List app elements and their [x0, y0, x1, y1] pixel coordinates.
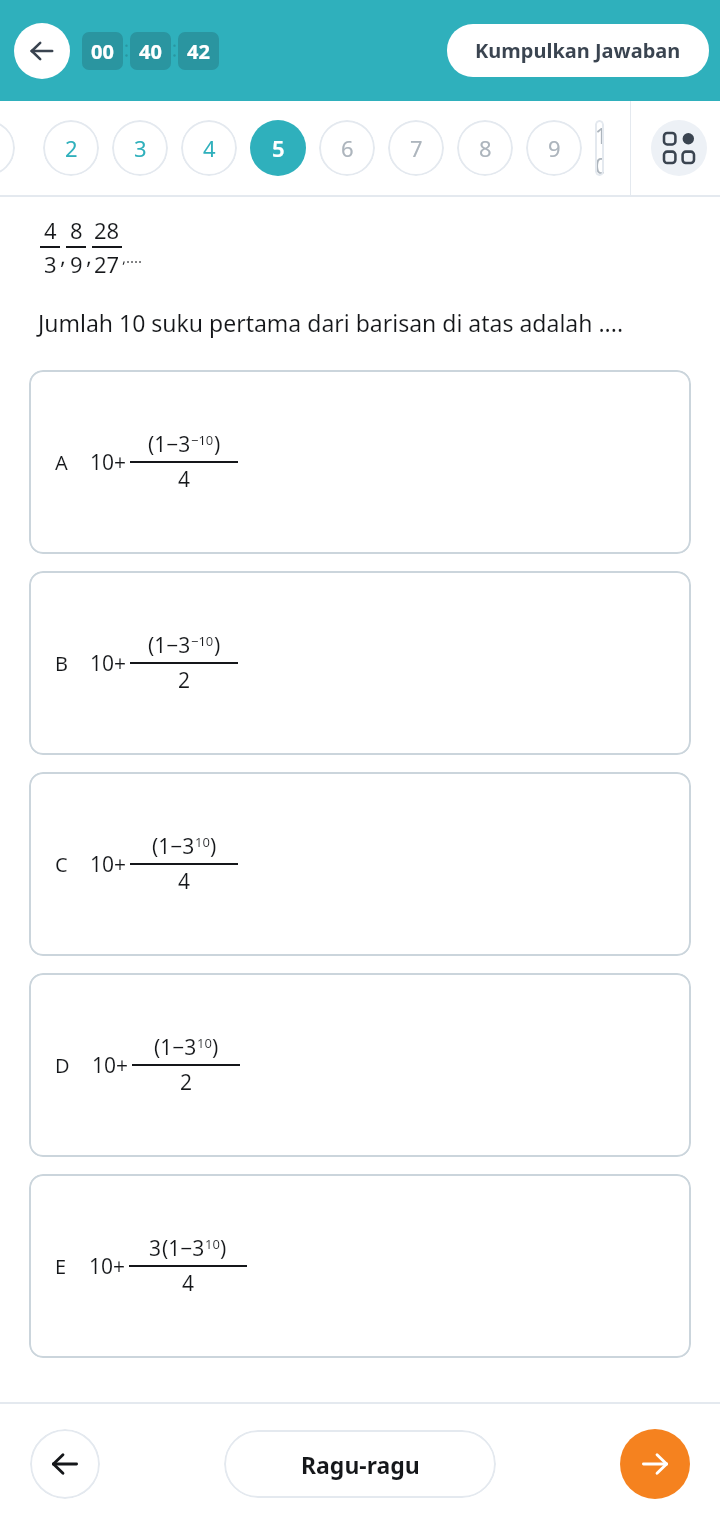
staticText: 40: [139, 38, 162, 65]
staticText: (1−3: [148, 631, 191, 660]
staticText: 9: [70, 249, 83, 279]
staticText: (1−3: [148, 430, 191, 459]
staticText: C: [55, 851, 68, 878]
staticText: 2: [65, 133, 78, 163]
staticText: ): [214, 631, 221, 660]
staticText: 4: [178, 867, 191, 896]
staticText: E: [55, 1253, 67, 1280]
staticText: 2: [178, 666, 191, 695]
staticText: 3: [134, 133, 147, 163]
button[interactable]: B: [29, 571, 691, 755]
button[interactable]: 2: [43, 120, 99, 176]
staticText: 3: [44, 249, 57, 279]
staticText: ): [212, 1033, 219, 1062]
button[interactable]: D: [29, 973, 691, 1157]
staticText: B: [55, 650, 68, 677]
staticText: 10: [197, 1034, 212, 1052]
staticText: 10+: [90, 448, 127, 477]
staticText: ): [210, 832, 217, 861]
button[interactable]: A: [29, 370, 691, 554]
staticText: 8: [479, 133, 492, 163]
staticText: ,: [86, 240, 92, 270]
button[interactable]: 10: [595, 120, 604, 176]
staticText: 10+: [90, 850, 127, 879]
button[interactable]: Ragu-ragu: [224, 1430, 496, 1498]
button[interactable]: 6: [319, 120, 375, 176]
staticText: Ragu-ragu: [301, 1449, 420, 1480]
button[interactable]: 8: [457, 120, 513, 176]
button[interactable]: Kumpulkan Jawaban: [447, 24, 709, 77]
button[interactable]: Previous question: [30, 1429, 100, 1499]
button[interactable]: C: [29, 772, 691, 956]
button[interactable]: Back: [14, 23, 70, 79]
button[interactable]: Question grid: [651, 120, 707, 176]
staticText: A: [55, 449, 68, 476]
staticText: 27: [94, 249, 120, 279]
staticText: ): [214, 430, 221, 459]
staticText: 4: [178, 465, 191, 494]
staticText: 10: [205, 1235, 220, 1253]
button[interactable]: 5: [250, 120, 306, 176]
button[interactable]: 9: [526, 120, 582, 176]
staticText: Jumlah 10 suku pertama dari barisan di a…: [38, 307, 684, 338]
staticText: 9: [548, 133, 561, 163]
staticText: 28: [94, 215, 120, 245]
staticText: 2: [180, 1068, 193, 1097]
staticText: 7: [410, 133, 423, 163]
staticText: 10+: [92, 1051, 129, 1080]
staticText: ,: [60, 240, 66, 270]
staticText: 10+: [90, 649, 127, 678]
staticText: (1−3: [152, 832, 195, 861]
staticText: 5: [272, 133, 285, 163]
staticText: 8: [70, 215, 83, 245]
button[interactable]: 7: [388, 120, 444, 176]
staticText: 4: [203, 133, 216, 163]
staticText: ): [220, 1234, 227, 1263]
staticText: 3: [149, 1234, 162, 1263]
staticText: (1−3: [162, 1234, 205, 1263]
staticText: 4: [44, 215, 57, 245]
staticText: −10: [191, 632, 214, 650]
staticText: 10+: [89, 1252, 126, 1281]
staticText: 6: [341, 133, 354, 163]
button[interactable]: 3: [112, 120, 168, 176]
staticText: 4: [182, 1269, 195, 1298]
button[interactable]: E: [29, 1174, 691, 1358]
staticText: −10: [191, 431, 214, 449]
staticText: 00: [91, 38, 114, 65]
staticText: 10: [195, 833, 210, 851]
button[interactable]: Next question: [620, 1429, 690, 1499]
button[interactable]: 1: [0, 120, 15, 176]
staticText: Kumpulkan Jawaban: [475, 37, 681, 64]
staticText: ,....: [122, 247, 143, 267]
staticText: 10: [595, 120, 604, 176]
button[interactable]: 4: [181, 120, 237, 176]
staticText: 42: [187, 38, 210, 65]
staticText: (1−3: [154, 1033, 197, 1062]
staticText: D: [55, 1052, 70, 1079]
